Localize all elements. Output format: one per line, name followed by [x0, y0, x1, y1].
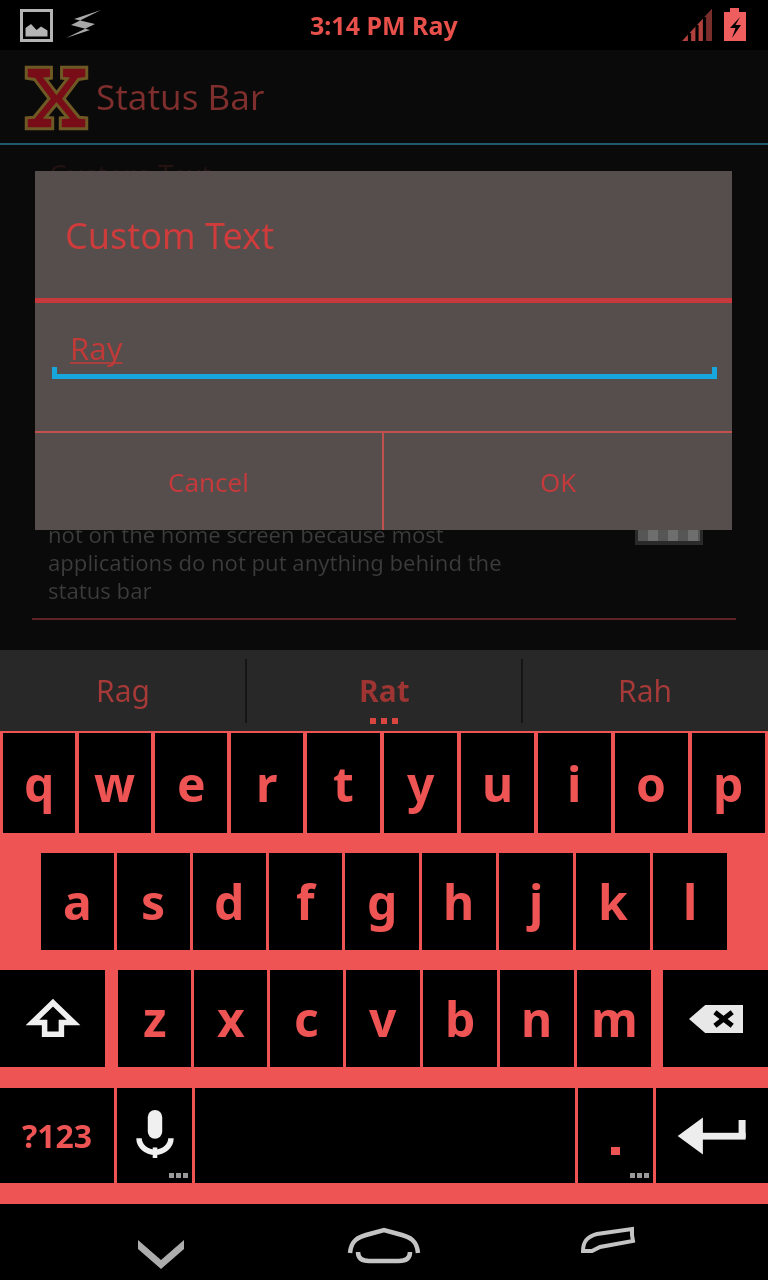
staticText: u	[482, 751, 514, 816]
button[interactable]: g	[345, 853, 419, 950]
staticText: x	[217, 986, 245, 1051]
staticText: Rag	[96, 670, 150, 711]
staticText: w	[94, 751, 136, 816]
staticText: Status Bar	[96, 73, 265, 121]
button[interactable]: a	[41, 853, 114, 950]
button[interactable]: r	[231, 733, 303, 833]
button[interactable]: u	[461, 733, 534, 833]
staticText: a	[63, 869, 92, 934]
button[interactable]: t	[307, 733, 380, 833]
button[interactable]: y	[384, 733, 457, 833]
button[interactable]: Recent apps	[548, 1204, 668, 1280]
staticText: d	[214, 869, 245, 934]
button[interactable]: OK	[384, 433, 732, 530]
button[interactable]: w	[79, 733, 151, 833]
staticText: s	[141, 869, 166, 934]
staticText: n	[521, 986, 553, 1051]
staticText: Cancel	[168, 464, 249, 499]
staticText: m	[591, 986, 638, 1051]
button[interactable]: c	[270, 970, 343, 1067]
staticText: Ray	[70, 327, 123, 369]
button[interactable]: n	[500, 970, 574, 1067]
staticText: h	[443, 869, 475, 934]
staticText: k	[598, 869, 628, 934]
staticText: g	[367, 869, 398, 934]
button[interactable]: m	[577, 970, 651, 1067]
staticText: p	[713, 751, 744, 816]
button[interactable]: q	[3, 733, 75, 833]
button[interactable]: p	[692, 733, 765, 833]
staticText: c	[294, 986, 319, 1051]
button[interactable]: f	[269, 853, 342, 950]
button[interactable]: Shift	[0, 970, 105, 1067]
staticText: q	[24, 751, 55, 816]
staticText: y	[407, 751, 435, 816]
button[interactable]: o	[615, 733, 688, 833]
staticText: 3:14 PM Ray	[310, 8, 458, 42]
button[interactable]: Hide keyboard	[96, 1204, 226, 1280]
staticText: r	[256, 751, 278, 816]
staticText: v	[369, 986, 397, 1051]
button[interactable]: d	[193, 853, 266, 950]
staticText: o	[636, 751, 667, 816]
staticText: j	[529, 869, 544, 934]
button[interactable]: e	[155, 733, 227, 833]
button[interactable]: z	[118, 970, 191, 1067]
button[interactable]: k	[576, 853, 650, 950]
staticText: OK	[540, 464, 577, 499]
button[interactable]: x	[194, 970, 267, 1067]
button[interactable]: i	[538, 733, 611, 833]
staticText: l	[683, 869, 698, 934]
button[interactable]: Status Bar	[0, 50, 768, 145]
button[interactable]: s	[117, 853, 190, 950]
staticText: z	[143, 986, 167, 1051]
button[interactable]: Backspace	[663, 970, 768, 1067]
staticText: i	[567, 751, 582, 816]
button[interactable]: v	[346, 970, 420, 1067]
button[interactable]: Home	[318, 1204, 450, 1280]
staticText: not on the home screen because most appl…	[48, 519, 536, 605]
button[interactable]: ?123	[0, 1088, 114, 1183]
staticText: b	[445, 986, 476, 1051]
staticText: Custom Text	[49, 155, 212, 193]
button[interactable]: l	[653, 853, 727, 950]
button[interactable]: Rat	[247, 650, 521, 731]
button[interactable]: h	[422, 853, 496, 950]
button[interactable]: b	[423, 970, 497, 1067]
button[interactable]: Voice input	[117, 1088, 192, 1183]
staticText: t	[333, 751, 354, 816]
staticText: f	[296, 869, 315, 934]
button[interactable]: Cancel	[35, 433, 382, 530]
staticText: Rah	[618, 670, 673, 711]
staticText: Rat	[359, 670, 410, 711]
button[interactable]: Rah	[523, 650, 768, 731]
button[interactable]: Enter	[656, 1088, 768, 1183]
button[interactable]: j	[499, 853, 573, 950]
staticText: ?123	[22, 1114, 93, 1158]
button[interactable]: Rag	[0, 650, 246, 731]
staticText: Custom Text	[65, 211, 275, 260]
button[interactable]	[578, 1088, 653, 1183]
staticText: e	[177, 751, 206, 816]
